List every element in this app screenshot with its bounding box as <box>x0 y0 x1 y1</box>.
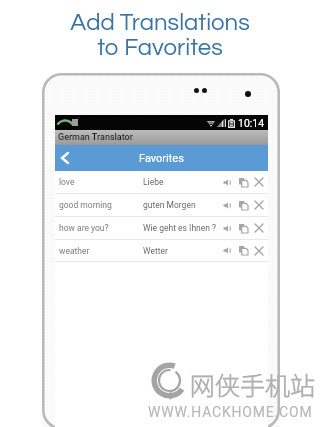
button[interactable]: Speak <box>223 201 232 210</box>
button[interactable]: Copy <box>239 178 248 187</box>
staticText: weather <box>59 246 90 256</box>
staticText: 网侠手机站 <box>190 366 316 402</box>
button[interactable]: Copy <box>239 201 248 210</box>
staticText: German Translator <box>58 132 133 143</box>
staticText: love <box>59 177 75 187</box>
button[interactable]: Speak <box>223 246 232 255</box>
button[interactable]: Speak <box>223 224 232 233</box>
button[interactable]: good morning <box>55 194 268 216</box>
button[interactable]: love <box>55 171 268 193</box>
button[interactable]: Delete <box>255 247 263 255</box>
button[interactable]: Back <box>55 145 75 171</box>
staticText: Add Translations <box>70 10 250 35</box>
button[interactable]: weather <box>55 240 268 261</box>
button[interactable]: Delete <box>255 201 263 209</box>
button[interactable]: Delete <box>255 178 263 186</box>
staticText: WWW.HACKHOME.COM <box>148 404 313 420</box>
staticText: good morning <box>59 200 112 210</box>
staticText: Wie geht es Ihnen ? <box>143 223 217 233</box>
staticText: how are you? <box>59 223 109 233</box>
staticText: to Favorites <box>97 35 223 60</box>
staticText: Favorites <box>139 152 184 165</box>
staticText: 10:14 <box>238 117 265 129</box>
button[interactable]: Back <box>55 145 268 171</box>
button[interactable]: Copy <box>239 246 248 255</box>
button[interactable]: Delete <box>255 224 263 232</box>
staticText: Wetter <box>143 246 168 256</box>
button[interactable]: Speak <box>223 178 232 187</box>
staticText: guten Morgen <box>143 200 196 210</box>
button[interactable]: Copy <box>239 224 248 233</box>
staticText: Liebe <box>143 177 164 187</box>
button[interactable]: how are you? <box>55 217 268 239</box>
